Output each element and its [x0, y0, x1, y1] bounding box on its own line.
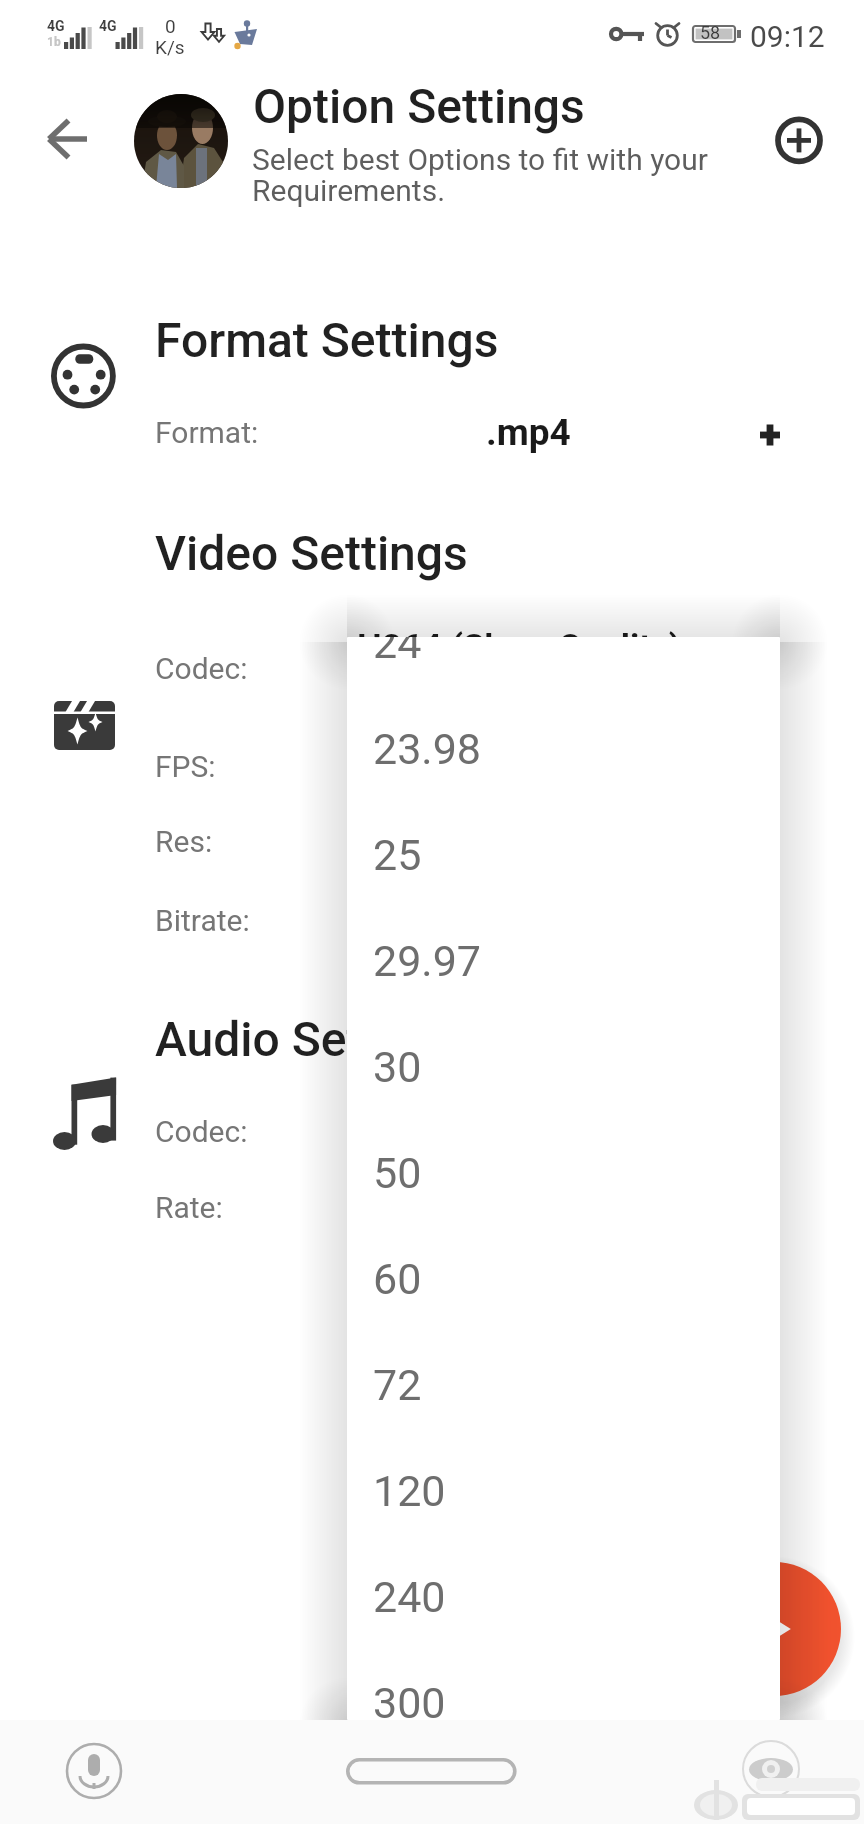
button[interactable]: 120 — [347, 1438, 780, 1544]
staticText: Codec: — [155, 651, 248, 686]
staticText: 25 — [373, 830, 422, 880]
button[interactable]: 24 — [347, 637, 780, 696]
staticText: 72 — [373, 1360, 422, 1410]
staticText: 23.98 — [373, 724, 482, 774]
button[interactable]: Back — [30, 100, 108, 178]
button[interactable]: 72 — [347, 1332, 780, 1438]
button[interactable]: 300 — [347, 1650, 780, 1720]
button[interactable]: 29.97 — [347, 908, 780, 1014]
button[interactable]: 25 — [347, 802, 780, 908]
staticText: Audio Settings — [155, 1011, 470, 1067]
staticText: 1b — [47, 35, 61, 49]
staticText: Res: — [155, 824, 213, 859]
button[interactable]: 23.98 — [347, 696, 780, 802]
button[interactable]: Profile photo — [134, 94, 228, 188]
staticText: 120 — [373, 1466, 446, 1516]
button[interactable] — [140, 404, 820, 468]
staticText: 4G — [47, 18, 65, 34]
staticText: 24 — [373, 637, 422, 668]
button[interactable]: Add format — [744, 409, 796, 461]
staticText: 300 — [373, 1678, 446, 1720]
staticText: 0 — [165, 15, 176, 37]
staticText: 4G — [99, 18, 117, 34]
staticText: 30 — [373, 1042, 422, 1092]
staticText: Format: — [155, 415, 259, 450]
button[interactable]: 240 — [347, 1544, 780, 1650]
button[interactable]: 60 — [347, 1226, 780, 1332]
staticText: Option Settings — [253, 78, 585, 134]
staticText: Rate: — [155, 1190, 223, 1225]
staticText: 240 — [373, 1572, 446, 1622]
staticText: Video Settings — [155, 525, 468, 581]
staticText: Codec: — [155, 1114, 248, 1149]
staticText: 60 — [373, 1254, 422, 1304]
staticText: 09:12 — [750, 19, 825, 54]
button[interactable]: 50 — [347, 1120, 780, 1226]
staticText: H264 (Show Quality) — [357, 627, 681, 668]
staticText: 58 — [700, 22, 721, 43]
staticText: 50 — [373, 1148, 422, 1198]
button[interactable]: Home — [346, 1758, 517, 1785]
staticText: FPS: — [155, 749, 216, 784]
button[interactable]: Convert — [707, 1562, 841, 1696]
staticText: Bitrate: — [155, 903, 250, 938]
button[interactable]: Eye comfort mode — [743, 1741, 799, 1797]
button[interactable]: Add — [762, 103, 836, 177]
staticText: 29.97 — [373, 936, 482, 986]
staticText: .mp4 — [486, 411, 571, 454]
button[interactable]: 30 — [347, 1014, 780, 1120]
staticText: Select best Options to fit with your Req… — [252, 142, 732, 208]
staticText: Format Settings — [155, 312, 499, 368]
button[interactable]: Voice assistant — [66, 1743, 122, 1799]
staticText: K/s — [155, 36, 185, 58]
